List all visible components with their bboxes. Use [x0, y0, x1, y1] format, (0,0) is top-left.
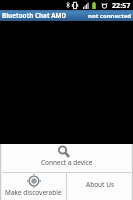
staticText: Make discoverable	[5, 188, 62, 197]
button[interactable]: Make discoverable	[0, 173, 66, 200]
button[interactable]: Connect a device	[0, 144, 133, 172]
staticText: About Us	[86, 180, 115, 189]
staticText: 22:57	[112, 0, 131, 10]
staticText: Bluetooth Chat AMD	[2, 11, 67, 20]
staticText: not connected	[88, 12, 132, 20]
staticText: Connect a device	[41, 158, 93, 167]
button[interactable]: About Us	[67, 173, 133, 200]
